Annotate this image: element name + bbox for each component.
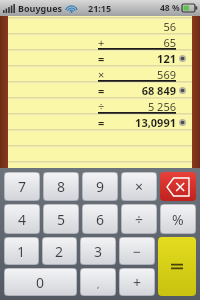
button[interactable]: 4 <box>4 204 40 234</box>
staticText: 6 <box>96 210 105 229</box>
button[interactable]: Copy result <box>179 55 186 62</box>
staticText: 65 <box>112 35 176 50</box>
staticText: × <box>135 177 144 196</box>
staticText: 48 % <box>160 2 180 14</box>
staticText: 3 <box>94 242 103 261</box>
button[interactable]: Copy result <box>179 87 186 94</box>
staticText: 13,0991 <box>112 115 176 130</box>
staticText: 9 <box>96 177 105 196</box>
staticText: Bouygues <box>18 2 63 14</box>
staticText: + <box>98 35 105 50</box>
staticText: , <box>97 278 100 290</box>
button[interactable]: 2 <box>42 237 77 265</box>
button[interactable]: 1 <box>4 237 39 265</box>
staticText: × <box>98 67 105 82</box>
button[interactable]: × <box>121 172 157 201</box>
button[interactable]: 7 <box>4 172 40 201</box>
staticText: + <box>133 273 142 292</box>
button[interactable]: % <box>160 204 196 234</box>
button[interactable]: 9 <box>82 172 118 201</box>
staticText: = <box>98 51 105 66</box>
button[interactable]: − <box>119 237 155 265</box>
button[interactable]: 6 <box>82 204 118 234</box>
staticText: 121 <box>112 51 176 66</box>
staticText: 4 <box>18 210 27 229</box>
staticText: ÷ <box>98 99 105 114</box>
staticText: = <box>98 83 105 98</box>
staticText: 5 256 <box>112 99 176 114</box>
staticText: 1 <box>17 242 26 261</box>
button[interactable]: 0 <box>4 268 77 296</box>
button[interactable]: ÷ <box>121 204 157 234</box>
staticText: 7 <box>18 177 27 196</box>
button[interactable]: 8 <box>43 172 79 201</box>
button[interactable]: Delete <box>160 172 196 201</box>
staticText: 569 <box>112 67 176 82</box>
staticText: % <box>172 210 184 229</box>
staticText: 0 <box>36 273 45 292</box>
button[interactable]: 5 <box>43 204 79 234</box>
button[interactable]: + <box>119 268 155 296</box>
staticText: 8 <box>57 177 66 196</box>
staticText: − <box>133 242 142 261</box>
staticText: 56 <box>112 19 176 34</box>
staticText: 68 849 <box>112 83 176 98</box>
button[interactable]: Copy result <box>179 119 186 126</box>
staticText: 5 <box>57 210 66 229</box>
staticText: 21:15 <box>88 2 112 14</box>
button[interactable] <box>158 237 196 296</box>
staticText: ÷ <box>135 210 144 229</box>
staticText: = <box>98 115 105 130</box>
button[interactable]: , <box>80 268 116 296</box>
button[interactable]: 3 <box>80 237 116 265</box>
staticText: 2 <box>55 242 64 261</box>
